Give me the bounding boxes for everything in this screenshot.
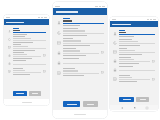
button[interactable]: [110, 47, 158, 56]
button[interactable]: Pick value: [42, 53, 46, 57]
button[interactable]: Pick value: [53, 47, 107, 57]
button[interactable]: Pick value: [4, 51, 49, 59]
button[interactable]: [4, 27, 49, 35]
button[interactable]: [4, 35, 49, 43]
button[interactable]: [29, 91, 41, 96]
button[interactable]: [119, 97, 134, 102]
button[interactable]: [53, 27, 107, 37]
button[interactable]: [4, 19, 49, 25]
button[interactable]: [53, 17, 107, 27]
button[interactable]: Pick value: [110, 74, 158, 83]
button[interactable]: [83, 101, 98, 107]
button[interactable]: Pick value: [100, 70, 104, 74]
button[interactable]: Pick value: [4, 67, 49, 75]
button[interactable]: [13, 91, 27, 96]
button[interactable]: [53, 37, 107, 47]
button[interactable]: Pick value: [110, 56, 158, 65]
button[interactable]: Back: [120, 106, 123, 109]
button[interactable]: [110, 29, 158, 38]
button[interactable]: Pick value: [53, 67, 107, 77]
button[interactable]: Pick value: [42, 69, 46, 73]
button[interactable]: [4, 43, 49, 51]
button[interactable]: Home: [133, 106, 136, 109]
button[interactable]: [136, 97, 149, 102]
button[interactable]: [53, 57, 107, 67]
button[interactable]: [63, 101, 80, 107]
button[interactable]: Recents: [145, 106, 148, 109]
button[interactable]: [110, 38, 158, 47]
button[interactable]: [4, 59, 49, 67]
button[interactable]: [110, 65, 158, 74]
button[interactable]: [53, 8, 107, 15]
button[interactable]: Pick value: [100, 50, 104, 54]
button[interactable]: Pick value: [151, 77, 155, 81]
button[interactable]: [110, 21, 158, 27]
button[interactable]: Pick value: [151, 59, 155, 63]
